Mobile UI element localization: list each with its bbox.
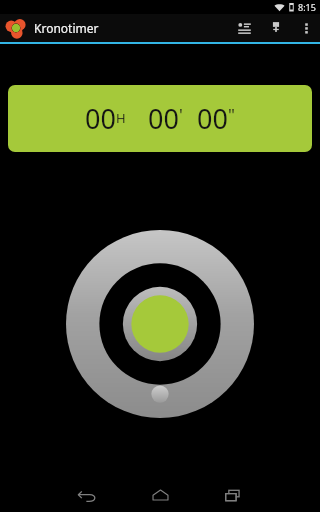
staticText: Kronotimer [34,20,99,36]
staticText: 00 [197,100,228,137]
staticText: 00 [85,100,116,137]
staticText: 8:15 [298,1,316,13]
button[interactable]: Recents [209,478,257,512]
button[interactable]: Kronotimer [4,16,28,40]
button[interactable]: Presets [228,14,260,42]
staticText: " [228,103,235,126]
button[interactable]: More options [292,14,320,42]
button[interactable]: Start timer [66,230,254,418]
staticText: 00 [148,100,179,137]
button[interactable]: Alarm sound [260,14,292,42]
button[interactable]: Back [63,478,111,512]
button[interactable]: Home [136,478,184,512]
staticText: H [116,109,126,127]
staticText: ' [179,103,183,126]
button[interactable]: 00 [8,85,312,152]
